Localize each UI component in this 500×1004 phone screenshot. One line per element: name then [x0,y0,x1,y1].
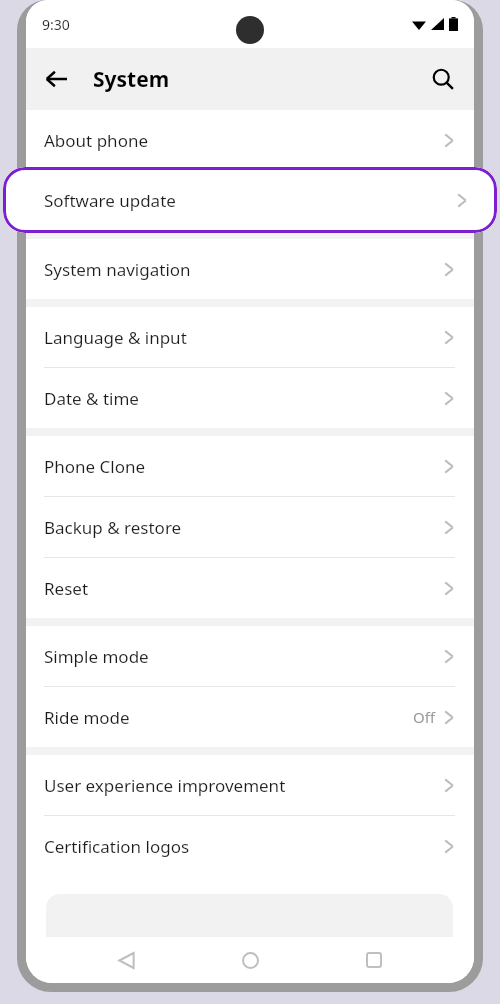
staticText: Reset [44,577,89,600]
staticText: Simple mode [44,645,149,668]
staticText: About phone [44,129,149,152]
button[interactable]: Date & time [26,368,474,428]
button[interactable]: Back [34,57,78,101]
staticText: Looking for other settings? [64,934,254,954]
staticText: User experience improvement [44,774,286,797]
button[interactable]: Reset [26,558,474,618]
button[interactable]: Search [421,57,465,101]
staticText: Language & input [44,326,187,349]
button[interactable]: User experience improvement [26,755,474,815]
button[interactable]: Home [226,937,274,983]
button[interactable]: Ride mode [26,687,474,747]
button[interactable]: Recent apps [350,937,398,983]
staticText: Ride mode [44,706,130,729]
button[interactable]: Certification logos [26,816,474,876]
button[interactable]: System navigation [26,239,474,299]
staticText: 9:30 [42,15,70,34]
staticText: Certification logos [44,835,190,858]
staticText: Phone Clone [44,455,146,478]
staticText: System navigation [44,258,191,281]
button[interactable]: Language & input [26,307,474,367]
button[interactable]: Phone Clone [26,436,474,496]
button[interactable]: Software update [26,171,474,231]
button[interactable]: Simple mode [26,626,474,686]
staticText: System [93,65,170,94]
staticText: Off [413,707,436,727]
button[interactable]: Software update [3,167,497,233]
staticText: Software update [44,190,176,213]
staticText: Backup & restore [44,516,182,539]
button[interactable]: Looking for other settings? [46,894,453,954]
staticText: Date & time [44,387,139,410]
button[interactable]: About phone [26,110,474,170]
button[interactable]: Backup & restore [26,497,474,557]
staticText: Software update [44,189,176,212]
button[interactable]: Back [102,937,150,983]
